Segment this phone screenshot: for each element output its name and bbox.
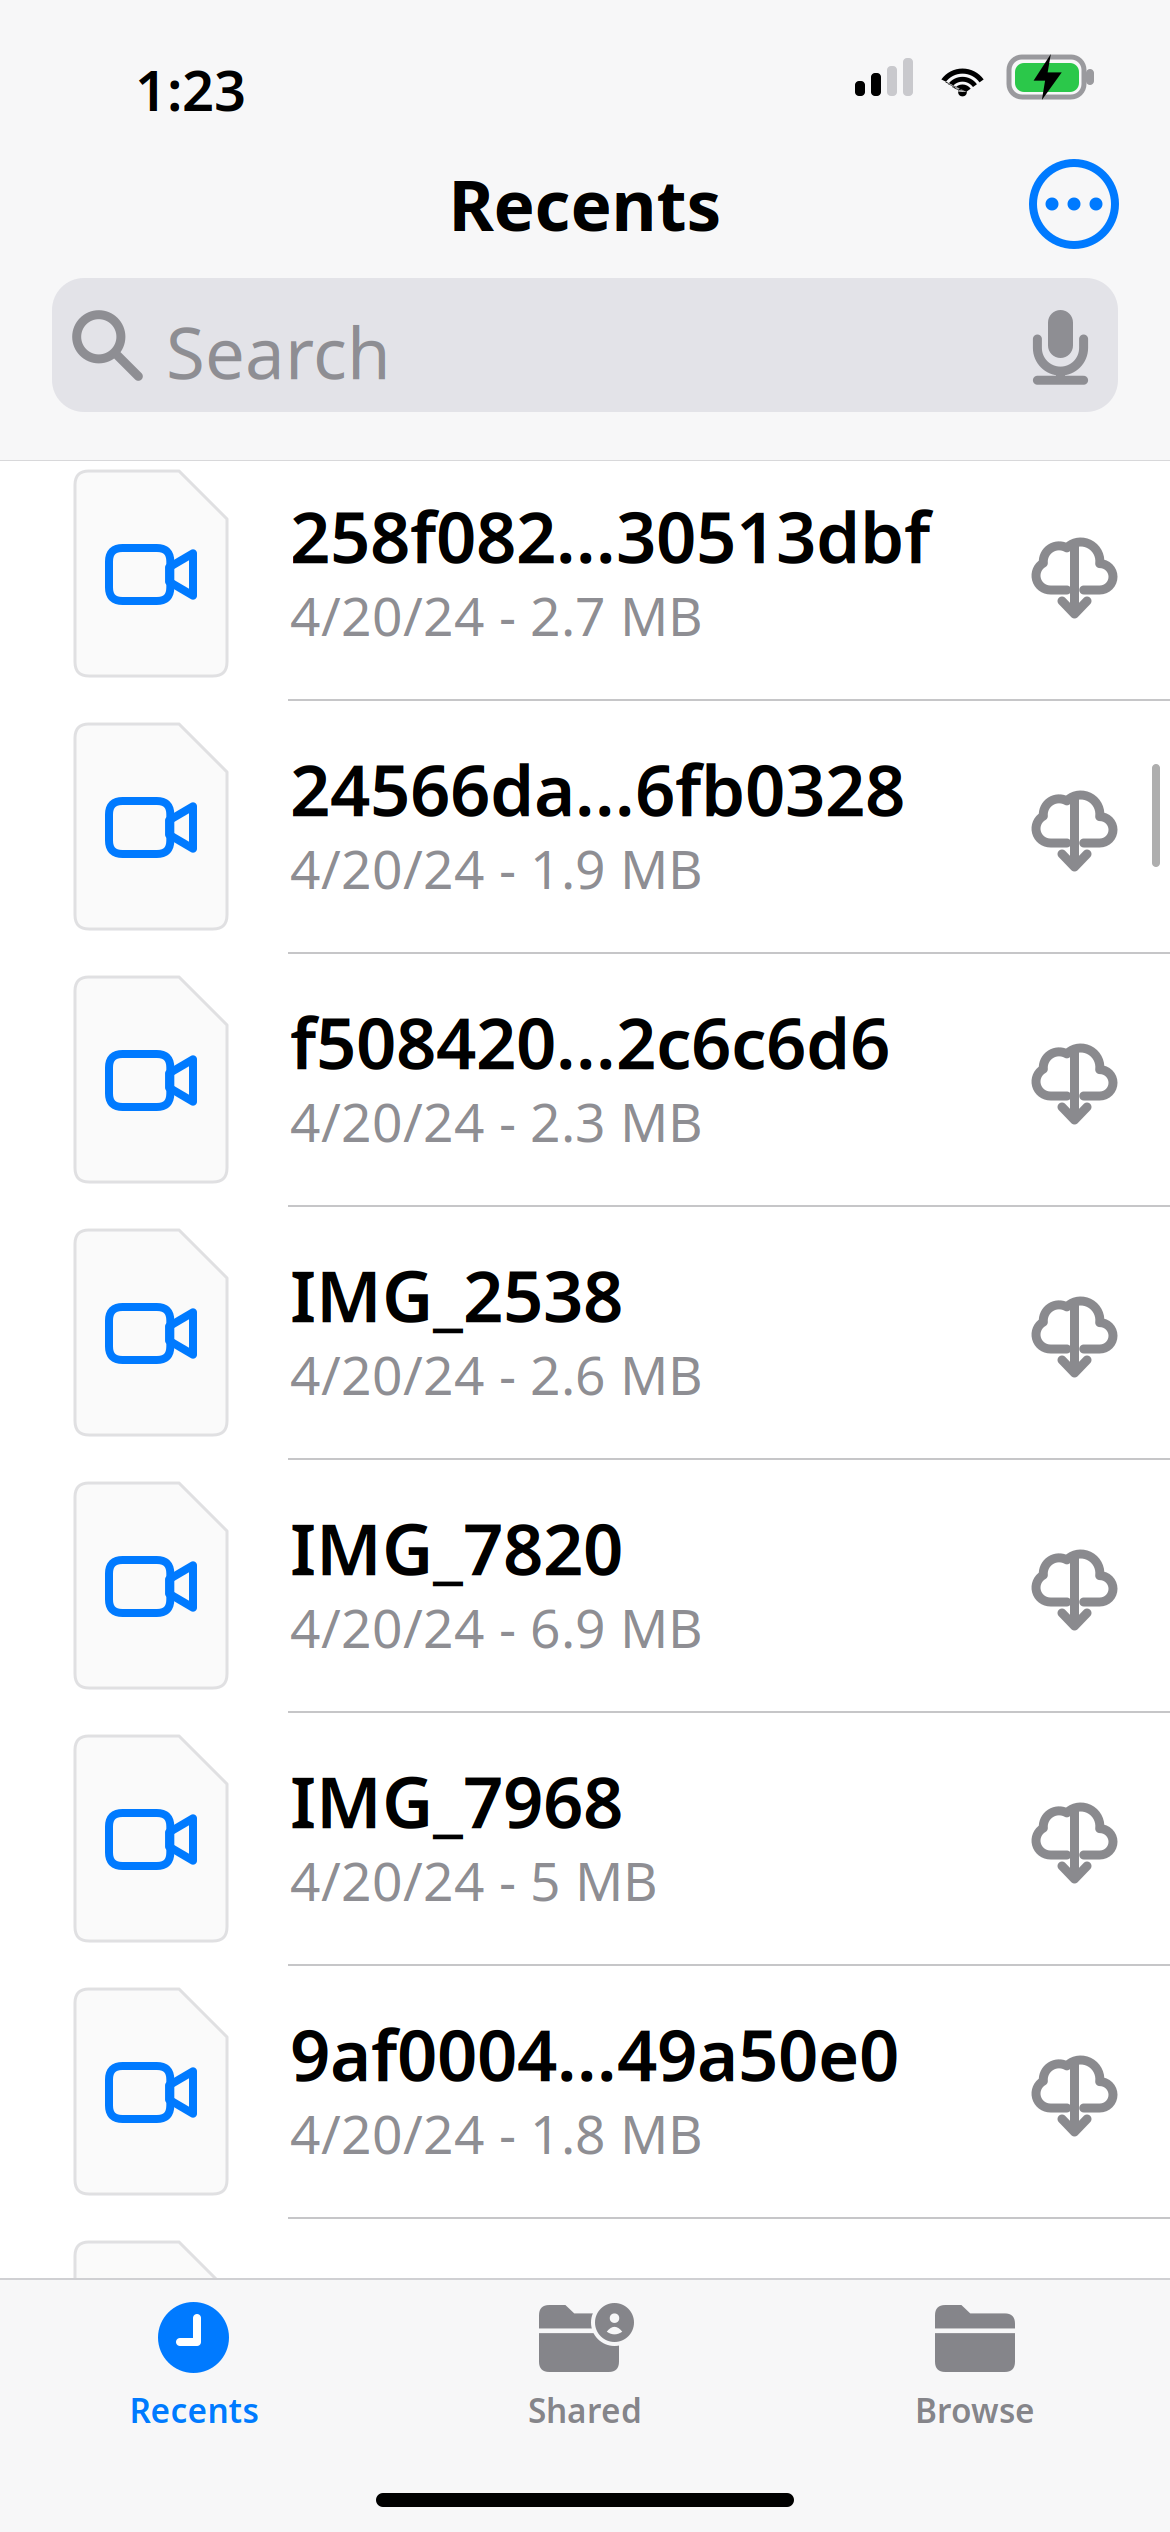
- button[interactable]: IMG_7820: [0, 1458, 1170, 1711]
- staticText: 4/20/24 - 2.6 MB: [290, 1339, 703, 1410]
- staticText: 1:23: [135, 52, 246, 126]
- staticText: 4/20/24 - 6.9 MB: [290, 1592, 703, 1663]
- button[interactable]: 24566da...6fb0328: [0, 699, 1170, 952]
- staticText: 4/20/24 - 1.9 MB: [290, 833, 703, 904]
- button[interactable]: 9af0004...49a50e0: [0, 1964, 1170, 2217]
- staticText: Shared: [528, 2388, 642, 2432]
- button[interactable]: Recents: [64, 2280, 324, 2430]
- staticText: 4/20/24 - 1.8 MB: [290, 2098, 703, 2169]
- button[interactable]: Shared: [455, 2280, 715, 2430]
- staticText: f508420...2c6c6d6: [290, 995, 890, 1089]
- button[interactable]: Search: [52, 278, 1118, 412]
- staticText: 4/20/24 - 2.7 MB: [290, 580, 703, 651]
- button[interactable]: IMG_7968: [0, 1711, 1170, 1964]
- button[interactable]: 258f082...30513dbf: [0, 446, 1170, 699]
- button[interactable]: IMG_2538: [0, 1205, 1170, 1458]
- staticText: 4/20/24 - 2.3 MB: [290, 1086, 703, 1157]
- button[interactable]: Browse: [845, 2280, 1105, 2430]
- button[interactable]: [0, 2217, 1170, 2470]
- staticText: Recents: [129, 2388, 258, 2432]
- staticText: IMG_7968: [290, 1754, 623, 1848]
- staticText: 258f082...30513dbf: [290, 489, 930, 583]
- staticText: 4/20/24 - 5 MB: [290, 1845, 658, 1916]
- staticText: IMG_2538: [290, 1248, 623, 1342]
- staticText: 24566da...6fb0328: [290, 742, 905, 836]
- staticText: Recents: [448, 158, 721, 250]
- staticText: 9af0004...49a50e0: [290, 2007, 899, 2101]
- button[interactable]: More: [1033, 163, 1115, 245]
- button[interactable]: f508420...2c6c6d6: [0, 952, 1170, 1205]
- staticText: Browse: [915, 2388, 1035, 2432]
- staticText: Search: [166, 305, 391, 399]
- staticText: IMG_7820: [290, 1501, 623, 1595]
